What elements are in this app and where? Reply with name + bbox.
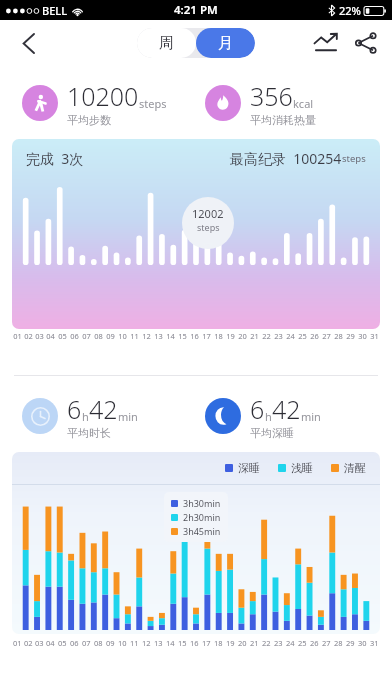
staticText: 10: [118, 331, 127, 341]
staticText: 24: [286, 638, 295, 648]
staticText: 29: [346, 638, 355, 648]
staticText: 356: [250, 79, 293, 113]
staticText: 25: [298, 331, 307, 341]
staticText: 09: [106, 331, 115, 341]
staticText: 22: [262, 331, 271, 341]
staticText: 06: [70, 331, 79, 341]
staticText: 19: [226, 331, 235, 341]
staticText: 18: [214, 331, 223, 341]
button[interactable]: 6: [205, 392, 378, 440]
staticText: 3h45min: [183, 525, 221, 537]
staticText: 23: [274, 331, 283, 341]
staticText: 平均消耗热量: [250, 113, 316, 127]
staticText: 01: [13, 638, 22, 648]
staticText: BELL: [42, 3, 68, 18]
staticText: 清醒: [344, 461, 366, 475]
staticText: steps: [342, 152, 366, 165]
staticText: 24: [286, 331, 295, 341]
staticText: 03: [35, 638, 44, 648]
staticText: 14: [166, 331, 175, 341]
staticText: 31: [370, 638, 379, 648]
staticText: kcal: [293, 96, 314, 111]
staticText: 30: [358, 331, 367, 341]
staticText: 42: [272, 392, 301, 426]
staticText: 31: [370, 331, 379, 341]
staticText: 2h30min: [183, 511, 221, 523]
button[interactable]: 完成 3次: [12, 139, 380, 329]
staticText: 6: [250, 392, 265, 426]
staticText: 10200: [67, 79, 139, 113]
staticText: 12002: [192, 206, 224, 221]
staticText: 13: [154, 331, 163, 341]
button[interactable]: Back: [8, 23, 48, 63]
staticText: 26: [310, 331, 319, 341]
staticText: min: [301, 409, 321, 424]
staticText: 19: [226, 638, 235, 648]
staticText: 20: [238, 331, 247, 341]
staticText: 42: [89, 392, 118, 426]
staticText: 05: [58, 638, 67, 648]
staticText: 02: [24, 331, 33, 341]
staticText: 29: [346, 331, 355, 341]
staticText: 周: [159, 34, 174, 53]
staticText: 02: [24, 638, 33, 648]
staticText: 浅睡: [291, 461, 313, 475]
staticText: 最高纪录 100254: [230, 149, 342, 168]
staticText: 28: [334, 638, 343, 648]
button[interactable]: Trends: [306, 23, 346, 63]
staticText: 28: [334, 331, 343, 341]
staticText: 13: [154, 638, 163, 648]
staticText: 26: [310, 638, 319, 648]
staticText: h: [265, 409, 272, 424]
staticText: 18: [214, 638, 223, 648]
staticText: 12: [142, 638, 151, 648]
staticText: 22%: [339, 3, 361, 18]
staticText: 25: [298, 638, 307, 648]
staticText: 06: [70, 638, 79, 648]
staticText: 08: [94, 638, 103, 648]
staticText: 16: [190, 331, 199, 341]
staticText: 03: [35, 331, 44, 341]
button[interactable]: 月: [196, 28, 255, 58]
staticText: 17: [202, 638, 211, 648]
staticText: 10: [118, 638, 127, 648]
button[interactable]: Share: [346, 23, 386, 63]
staticText: steps: [139, 96, 167, 111]
staticText: 30: [358, 638, 367, 648]
staticText: 04: [46, 331, 55, 341]
staticText: 21: [250, 638, 259, 648]
staticText: 23: [274, 638, 283, 648]
staticText: 07: [82, 331, 91, 341]
staticText: 平均深睡: [250, 426, 294, 440]
staticText: steps: [197, 221, 220, 233]
staticText: 月: [218, 34, 233, 53]
staticText: 22: [262, 638, 271, 648]
staticText: 17: [202, 331, 211, 341]
staticText: 21: [250, 331, 259, 341]
staticText: 15: [178, 638, 187, 648]
button[interactable]: 6: [22, 392, 205, 440]
staticText: 3h30min: [183, 497, 221, 509]
staticText: 27: [322, 638, 331, 648]
staticText: 11: [130, 638, 139, 648]
staticText: 6: [67, 392, 82, 426]
button[interactable]: 10200: [22, 79, 205, 127]
staticText: 14: [166, 638, 175, 648]
staticText: 15: [178, 331, 187, 341]
button[interactable]: 356: [205, 79, 378, 127]
staticText: 11: [130, 331, 139, 341]
button[interactable]: 周: [137, 28, 196, 58]
staticText: 深睡: [238, 461, 260, 475]
staticText: 07: [82, 638, 91, 648]
staticText: 09: [106, 638, 115, 648]
staticText: 08: [94, 331, 103, 341]
staticText: 完成 3次: [26, 149, 84, 168]
staticText: 16: [190, 638, 199, 648]
button[interactable]: 深睡: [12, 452, 380, 634]
staticText: 27: [322, 331, 331, 341]
staticText: 平均时长: [67, 426, 111, 440]
staticText: 4:21 PM: [174, 2, 218, 18]
staticText: 平均步数: [67, 113, 111, 127]
staticText: min: [118, 409, 138, 424]
staticText: 20: [238, 638, 247, 648]
